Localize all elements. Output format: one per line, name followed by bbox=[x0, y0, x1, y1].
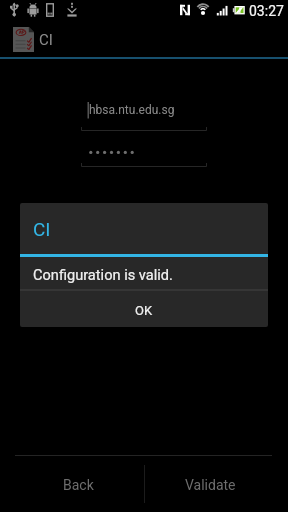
button[interactable]: Validate bbox=[144, 456, 276, 512]
staticText: CI bbox=[39, 31, 53, 49]
staticText: hbsa.ntu.edu.sg bbox=[89, 103, 175, 117]
button[interactable]: hbsa.ntu.edu.sg bbox=[81, 100, 207, 131]
button[interactable]: OK bbox=[20, 293, 268, 327]
staticText: Validate bbox=[185, 477, 236, 493]
button[interactable]: Back bbox=[13, 456, 144, 512]
button[interactable] bbox=[81, 136, 207, 167]
staticText: OK bbox=[135, 303, 153, 318]
staticText: Back bbox=[63, 477, 94, 493]
staticText: Configuration is valid. bbox=[33, 266, 173, 283]
other: App icon bbox=[13, 27, 34, 52]
staticText: 03:27 bbox=[249, 3, 284, 19]
staticText: CI bbox=[33, 218, 51, 240]
